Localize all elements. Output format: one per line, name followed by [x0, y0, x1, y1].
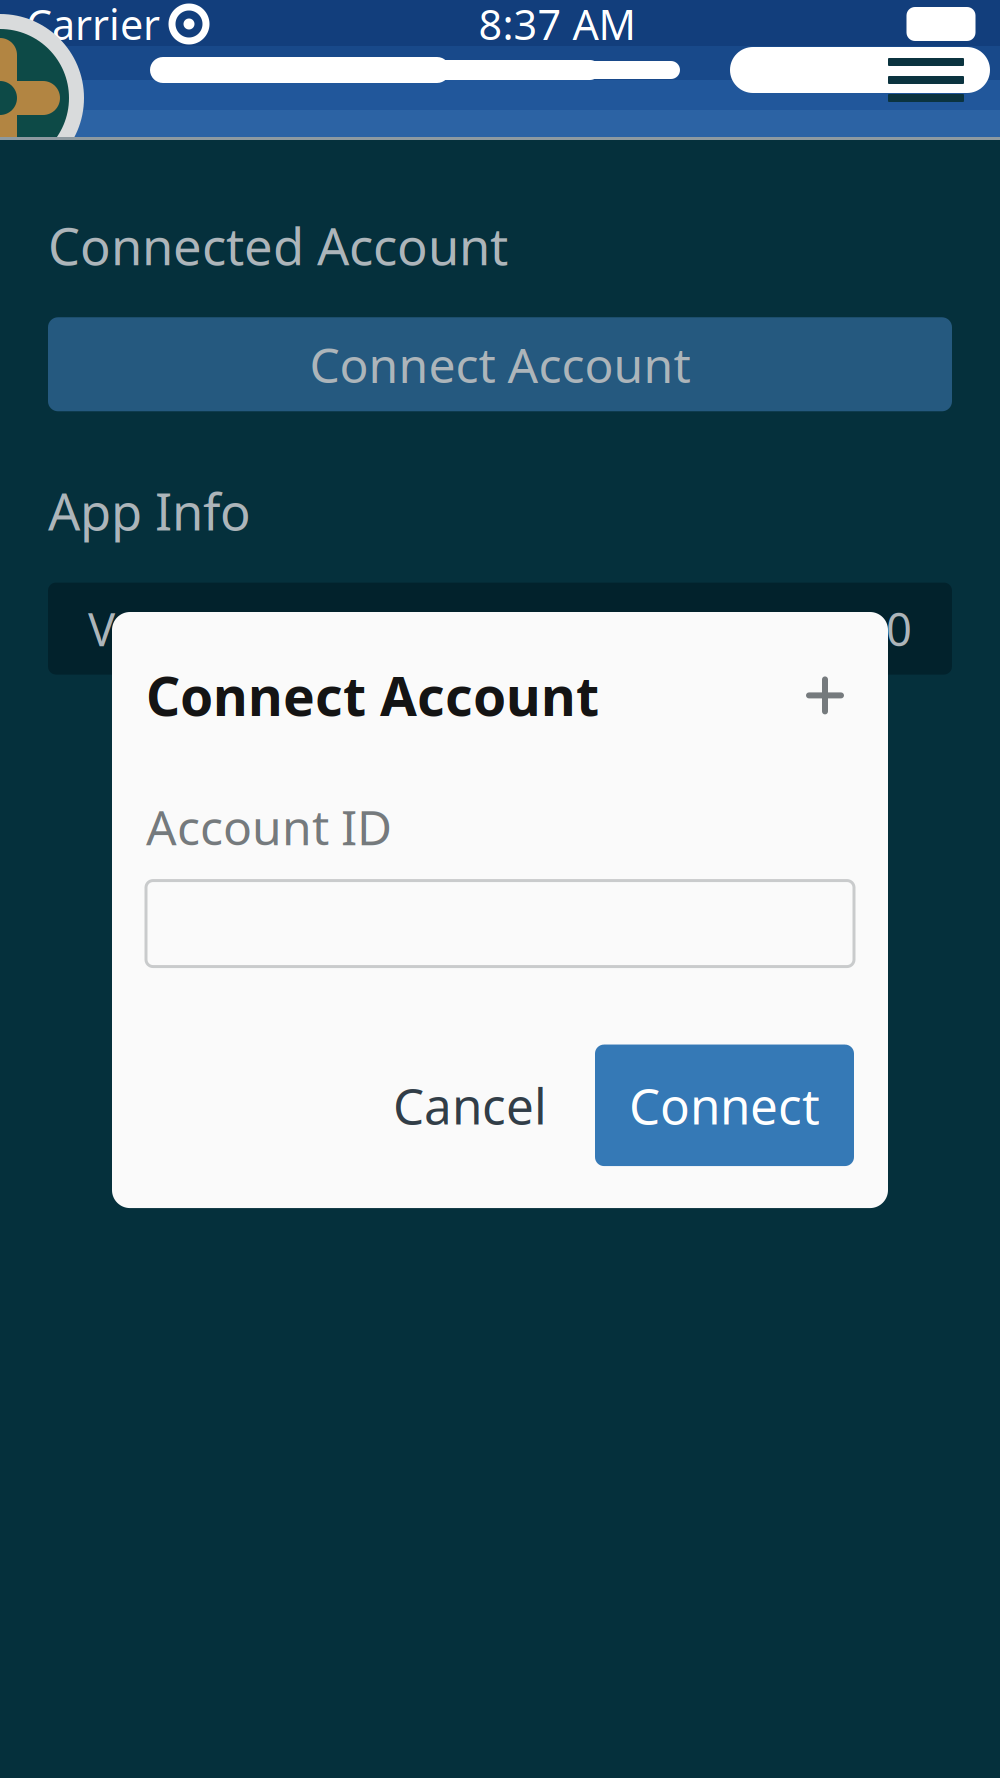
button[interactable]: Cancel — [367, 1049, 573, 1162]
staticText: Connect — [629, 1073, 820, 1138]
staticText: Version — [88, 598, 248, 659]
button[interactable]: Close — [796, 666, 854, 724]
staticText: Connect Account — [146, 660, 599, 731]
staticText: App Info — [48, 477, 251, 545]
button[interactable]: Connect — [595, 1045, 854, 1166]
staticText: Account ID — [146, 795, 392, 858]
staticText: Connect Account — [309, 332, 690, 396]
staticText: 8:37 AM — [478, 0, 635, 51]
staticText: Connected Account — [48, 212, 508, 279]
staticText: 3.0 — [848, 598, 912, 659]
staticText: Carrier — [26, 0, 160, 51]
button[interactable]: Connect Account — [48, 317, 952, 411]
button[interactable]: Menu — [874, 44, 978, 116]
staticText: Cancel — [393, 1073, 547, 1138]
